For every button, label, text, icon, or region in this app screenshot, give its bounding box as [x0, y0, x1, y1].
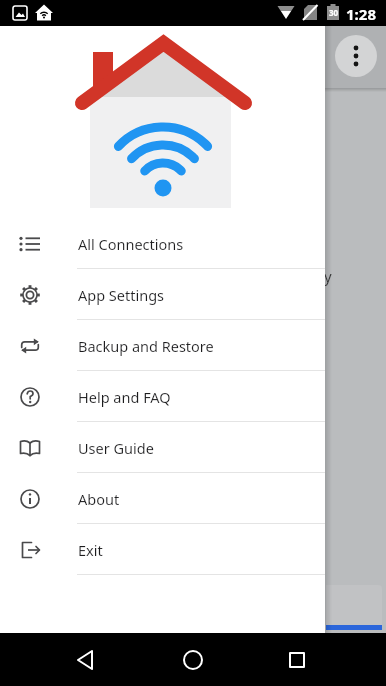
- staticText: Exit: [78, 540, 103, 560]
- staticText: 1:28: [346, 4, 376, 24]
- button[interactable]: [326, 585, 382, 630]
- button[interactable]: About: [0, 473, 325, 524]
- button[interactable]: Exit: [0, 524, 325, 575]
- button[interactable]: All Connections: [0, 218, 325, 269]
- staticText: All Connections: [78, 234, 184, 254]
- button[interactable]: User Guide: [0, 422, 325, 473]
- button[interactable]: App Settings: [0, 269, 325, 320]
- staticText: About: [78, 489, 120, 509]
- staticText: Help and FAQ: [78, 387, 171, 407]
- staticText: User Guide: [78, 438, 154, 458]
- staticText: Backup and Restore: [78, 336, 214, 356]
- staticText: App Settings: [78, 285, 165, 305]
- button[interactable]: [335, 35, 377, 77]
- staticText: 30: [329, 7, 339, 18]
- staticText: y: [324, 266, 332, 286]
- button[interactable]: Help and FAQ: [0, 371, 325, 422]
- button[interactable]: [64, 639, 106, 681]
- button[interactable]: Backup and Restore: [0, 320, 325, 371]
- button[interactable]: [276, 639, 318, 681]
- button[interactable]: [172, 639, 214, 681]
